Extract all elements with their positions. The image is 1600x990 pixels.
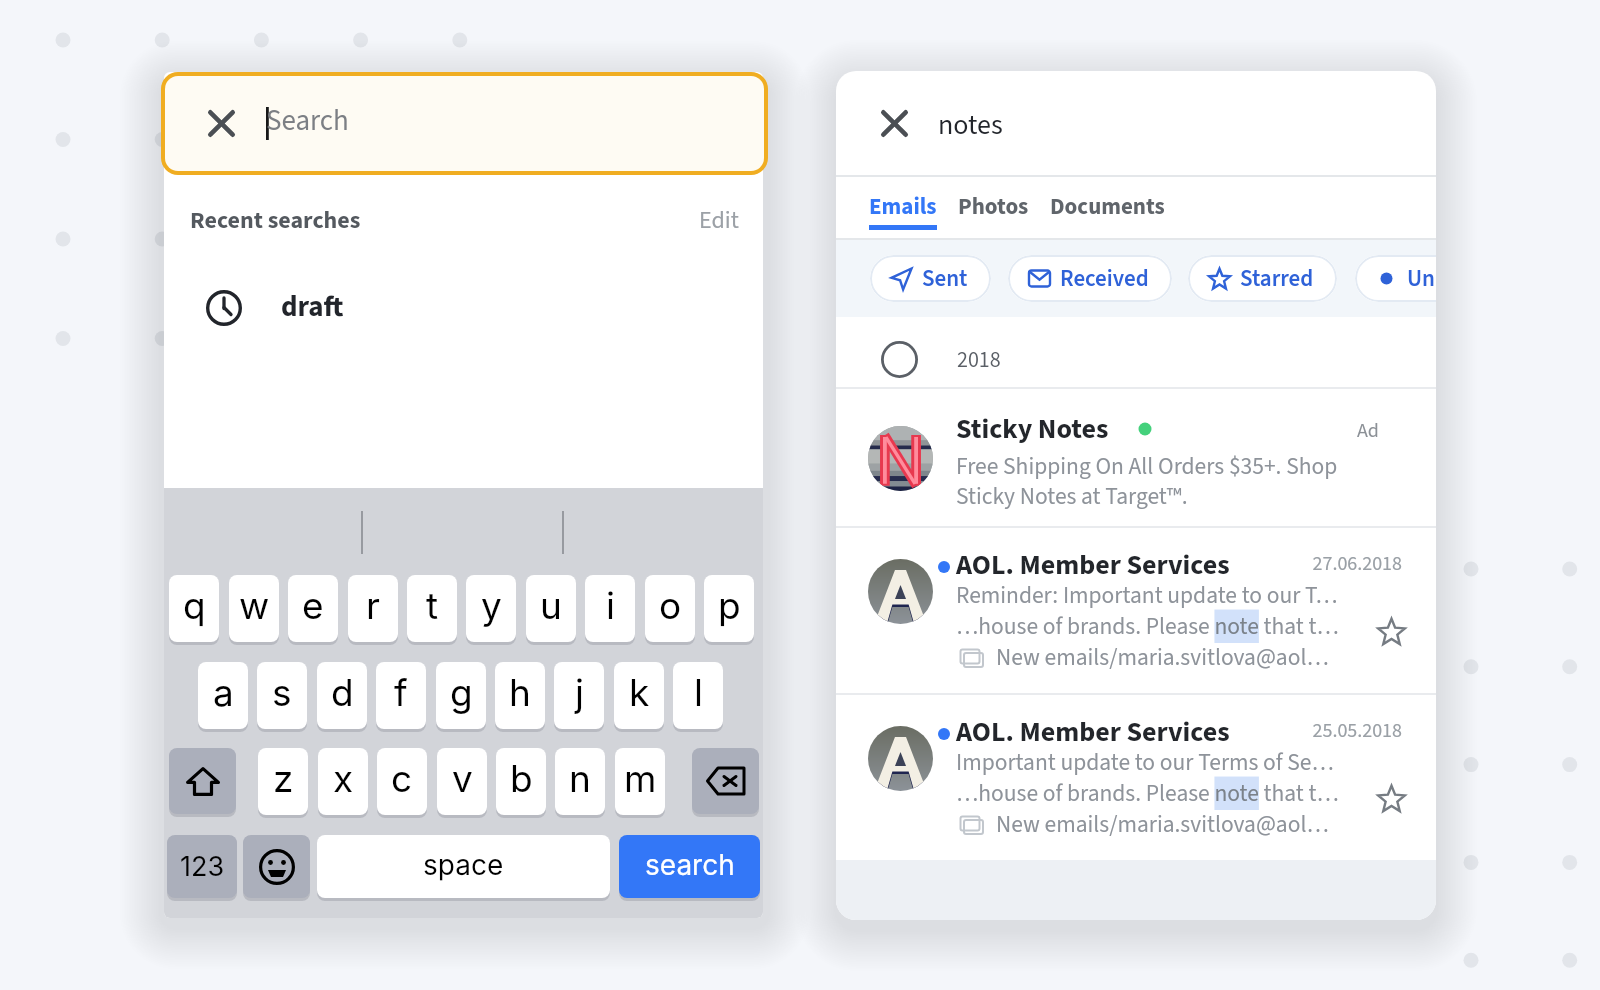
- button[interactable]: Emails: [869, 190, 937, 230]
- button[interactable]: c: [377, 748, 427, 815]
- button[interactable]: j: [554, 662, 604, 729]
- button[interactable]: b: [496, 748, 546, 815]
- button[interactable]: i: [585, 575, 635, 642]
- button[interactable]: w: [229, 575, 279, 642]
- button[interactable]: Emoji keyboard: [243, 835, 310, 898]
- staticText: y: [481, 583, 502, 628]
- staticText: n: [569, 756, 591, 801]
- button[interactable]: g: [436, 662, 486, 729]
- staticText: Ad: [1357, 417, 1379, 445]
- staticText: b: [510, 756, 533, 801]
- button[interactable]: n: [555, 748, 605, 815]
- button[interactable]: l: [673, 662, 723, 729]
- staticText: Documents: [1050, 190, 1165, 223]
- button[interactable]: k: [614, 662, 664, 729]
- button[interactable]: space: [317, 835, 610, 898]
- staticText: Unread: [1407, 262, 1436, 295]
- button[interactable]: z: [258, 748, 308, 815]
- staticText: Starred: [1240, 262, 1314, 295]
- button[interactable]: Sent: [890, 255, 968, 302]
- button[interactable]: d: [317, 662, 367, 729]
- button[interactable]: m: [615, 748, 665, 815]
- button[interactable]: Received: [1028, 255, 1149, 302]
- staticText: q: [183, 583, 206, 628]
- button[interactable]: draft: [164, 271, 763, 341]
- staticText: New emails/maria.svitlova@aol…: [996, 808, 1329, 841]
- button[interactable]: s: [257, 662, 307, 729]
- button[interactable]: Unread: [1375, 255, 1436, 302]
- staticText: w: [239, 583, 270, 628]
- staticText: z: [273, 756, 294, 801]
- staticText: AOL. Member Services: [956, 712, 1230, 752]
- button[interactable]: Star: [1371, 611, 1411, 651]
- button[interactable]: p: [704, 575, 754, 642]
- staticText: Sticky Notes: [956, 409, 1109, 449]
- staticText: f: [394, 670, 408, 715]
- button[interactable]: h: [495, 662, 545, 729]
- button[interactable]: AOL. Member Services: [836, 695, 1436, 860]
- button[interactable]: x: [318, 748, 368, 815]
- staticText: t: [426, 583, 439, 628]
- button[interactable]: Star: [1371, 778, 1411, 818]
- staticText: s: [272, 670, 292, 715]
- button[interactable]: 123: [167, 835, 237, 898]
- staticText: Emails: [869, 190, 937, 223]
- button[interactable]: Edit: [699, 203, 739, 237]
- staticText: 123: [180, 850, 225, 883]
- button[interactable]: t: [407, 575, 457, 642]
- staticText: …house of brands. Please note that t…: [956, 610, 1339, 643]
- button[interactable]: y: [466, 575, 516, 642]
- staticText: draft: [281, 286, 344, 327]
- staticText: Free Shipping On All Orders $35+. Shop S…: [956, 450, 1338, 513]
- staticText: k: [629, 670, 650, 715]
- staticText: search: [645, 848, 735, 882]
- button[interactable]: Documents: [1050, 190, 1165, 230]
- staticText: 2018: [957, 344, 1001, 375]
- staticText: e: [302, 583, 324, 628]
- staticText: notes: [938, 105, 1003, 145]
- button[interactable]: AOL. Member Services: [836, 528, 1436, 693]
- button[interactable]: Backspace: [692, 748, 759, 814]
- staticText: r: [366, 583, 380, 628]
- staticText: g: [450, 670, 473, 715]
- staticText: …house of brands. Please note that t…: [956, 777, 1339, 810]
- staticText: Search: [266, 100, 349, 141]
- staticText: AOL. Member Services: [956, 545, 1230, 585]
- button[interactable]: f: [376, 662, 426, 729]
- staticText: Recent searches: [190, 203, 361, 237]
- staticText: j: [575, 670, 584, 715]
- button[interactable]: Sticky Notes: [836, 389, 1436, 526]
- staticText: New emails/maria.svitlova@aol…: [996, 641, 1329, 674]
- button[interactable]: q: [169, 575, 219, 642]
- staticText: Sent: [922, 262, 968, 295]
- button[interactable]: 2018: [836, 317, 1436, 387]
- button[interactable]: Photos: [958, 190, 1029, 230]
- button[interactable]: Starred: [1208, 255, 1314, 302]
- button[interactable]: Close search: [881, 110, 908, 137]
- button[interactable]: o: [645, 575, 695, 642]
- staticText: v: [452, 756, 473, 801]
- staticText: Edit: [699, 203, 739, 237]
- button[interactable]: e: [288, 575, 338, 642]
- staticText: o: [659, 583, 682, 628]
- staticText: Reminder: Important update to our T…: [956, 579, 1338, 612]
- staticText: 27.06.2018: [1274, 550, 1402, 578]
- staticText: Photos: [958, 190, 1029, 223]
- staticText: h: [509, 670, 531, 715]
- button[interactable]: search: [619, 835, 760, 898]
- staticText: u: [540, 583, 562, 628]
- button[interactable]: Close search: [165, 76, 764, 171]
- button[interactable]: u: [526, 575, 576, 642]
- staticText: m: [624, 756, 657, 801]
- staticText: c: [391, 756, 413, 801]
- other: Close search: [208, 110, 235, 137]
- button[interactable]: r: [348, 575, 398, 642]
- staticText: Received: [1060, 262, 1149, 295]
- button[interactable]: Shift: [169, 748, 236, 814]
- button[interactable]: v: [437, 748, 487, 815]
- staticText: l: [694, 670, 703, 715]
- staticText: 25.05.2018: [1274, 717, 1402, 745]
- button[interactable]: a: [198, 662, 248, 729]
- staticText: a: [213, 670, 234, 715]
- staticText: i: [606, 583, 615, 628]
